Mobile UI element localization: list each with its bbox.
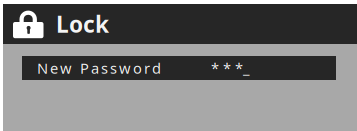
- staticText: Lock: [56, 9, 109, 39]
- staticText: * * *_: [211, 58, 250, 78]
- button[interactable]: N e w P a s s w o r d: [22, 56, 336, 80]
- staticText: N e w P a s s w o r d: [37, 58, 161, 78]
